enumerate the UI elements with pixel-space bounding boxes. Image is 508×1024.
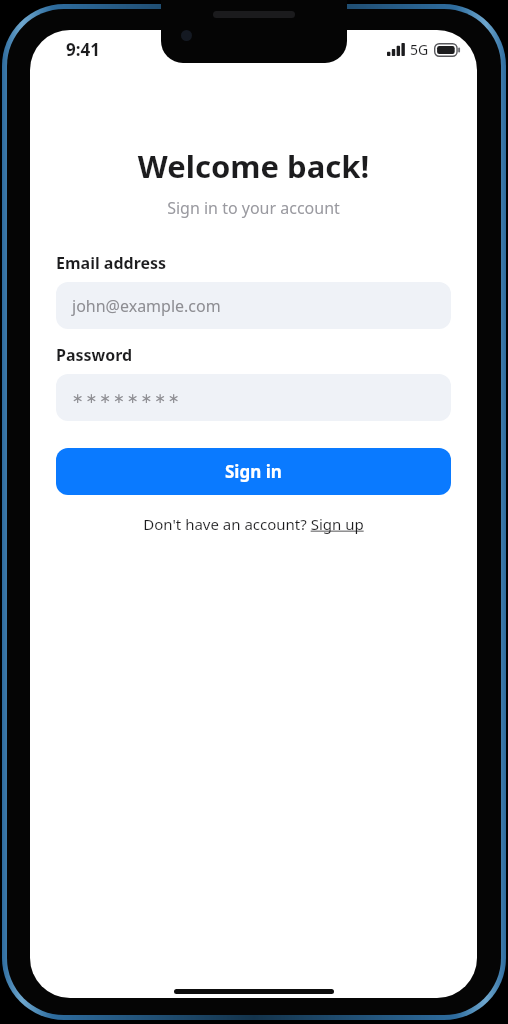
staticText: ∗∗∗∗∗∗∗∗: [72, 390, 182, 406]
staticText: Password: [56, 344, 133, 366]
staticText: 5G: [410, 40, 429, 59]
button[interactable]: john@example.com: [56, 282, 451, 329]
staticText: Welcome back!: [30, 145, 477, 187]
staticText: Sign in: [225, 460, 282, 483]
button[interactable]: Sign in: [56, 448, 451, 495]
staticText: Sign in to your account: [30, 197, 477, 219]
staticText: john@example.com: [72, 295, 221, 317]
button[interactable]: Don't have an account? Sign up: [30, 514, 477, 534]
staticText: 9:41: [66, 38, 100, 61]
staticText: Email address: [56, 252, 167, 274]
staticText: Don't have an account? Sign up: [143, 514, 364, 534]
button[interactable]: ∗∗∗∗∗∗∗∗: [56, 374, 451, 421]
